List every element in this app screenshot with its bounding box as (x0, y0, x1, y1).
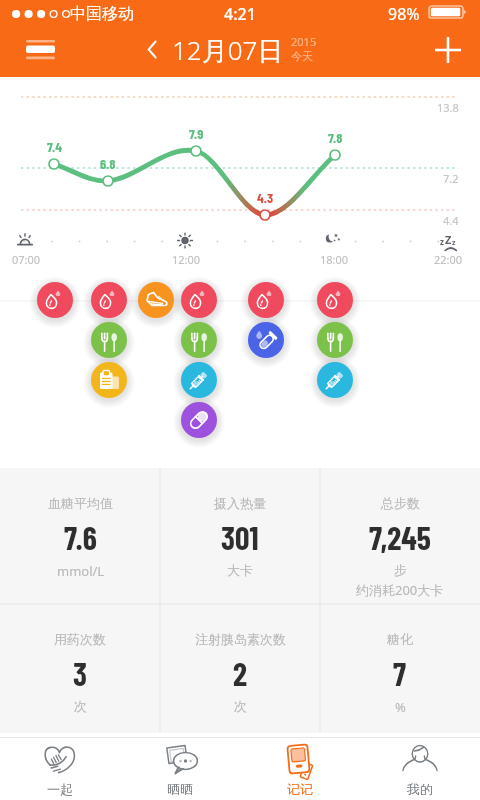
button[interactable]: 晒晒 (120, 737, 240, 800)
button[interactable]: Meal (317, 322, 353, 358)
staticText: 3 (73, 654, 87, 692)
staticText: 我的 (407, 781, 433, 797)
staticText: 12:00 (172, 252, 201, 267)
staticText: 4:21 (224, 3, 256, 25)
button[interactable]: 摄入热量 (160, 468, 320, 604)
button[interactable]: 记记 (240, 737, 360, 800)
button[interactable]: Medication (181, 402, 217, 438)
staticText: 7.2 (443, 171, 459, 185)
staticText: 12月07日 (172, 32, 284, 66)
button[interactable]: Menu (14, 32, 67, 68)
staticText: 记记 (287, 781, 313, 797)
staticText: 晒晒 (167, 781, 193, 797)
staticText: 18:00 (320, 252, 349, 267)
staticText: 07:00 (12, 252, 41, 267)
staticText: 13.8 (437, 100, 459, 114)
button[interactable]: Insulin injection (181, 362, 217, 398)
button[interactable]: 12月07日 (146, 32, 317, 66)
staticText: 约消耗200大卡 (356, 581, 444, 599)
button[interactable]: Blood glucose (37, 282, 73, 318)
button[interactable]: Blood glucose (181, 282, 217, 318)
staticText: 总步数 (381, 495, 420, 511)
staticText: 糖化 (387, 631, 413, 647)
button[interactable]: Insulin injection (317, 362, 353, 398)
staticText: 中国移动 (70, 4, 134, 24)
button[interactable]: Medical record (91, 362, 127, 398)
staticText: 6.8 (100, 155, 116, 172)
staticText: mmol/L (57, 562, 105, 580)
staticText: 注射胰岛素次数 (195, 631, 286, 647)
staticText: 一起 (47, 781, 73, 797)
staticText: 2 (233, 654, 248, 692)
staticText: Z (445, 232, 452, 247)
staticText: 血糖平均值 (48, 495, 113, 511)
staticText: 98% (388, 3, 420, 25)
staticText: 301 (221, 518, 259, 556)
button[interactable]: 总步数 (320, 468, 480, 604)
staticText: 7.8 (328, 129, 343, 146)
button[interactable]: Blood test (248, 322, 284, 358)
staticText: 7,245 (369, 518, 431, 556)
button[interactable]: 注射胰岛素次数 (160, 604, 320, 740)
button[interactable]: 糖化 (320, 604, 480, 740)
staticText: 步 (394, 562, 407, 578)
button[interactable]: Meal (91, 322, 127, 358)
button[interactable]: Blood glucose (91, 282, 127, 318)
staticText: z (440, 236, 444, 247)
staticText: 次 (234, 698, 247, 714)
staticText: 摄入热量 (214, 495, 266, 511)
staticText: 7.9 (189, 125, 204, 142)
button[interactable]: 用药次数 (0, 604, 160, 740)
staticText: 4.3 (257, 189, 274, 206)
button[interactable]: Add (424, 30, 472, 70)
button[interactable]: Meal (181, 322, 217, 358)
staticText: 7.4 (47, 138, 62, 155)
staticText: 用药次数 (54, 631, 106, 647)
staticText: 22:00 (434, 252, 463, 267)
staticText: 4.4 (443, 213, 459, 227)
button[interactable]: 一起 (0, 737, 120, 800)
staticText: 今天 (291, 49, 313, 63)
button[interactable]: Blood glucose (248, 282, 284, 318)
staticText: z (452, 238, 456, 248)
staticText: 大卡 (227, 562, 253, 578)
staticText: 7 (393, 654, 407, 692)
button[interactable]: 血糖平均值 (0, 468, 160, 604)
staticText: 2015 (291, 34, 317, 49)
staticText: 次 (74, 698, 87, 714)
staticText: % (395, 698, 406, 716)
button[interactable]: Blood glucose (317, 282, 353, 318)
button[interactable]: Steps (138, 282, 174, 318)
button[interactable]: 我的 (360, 737, 480, 800)
staticText: 7.6 (64, 518, 97, 556)
